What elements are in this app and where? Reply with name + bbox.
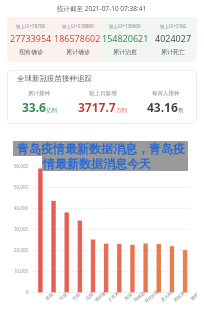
staticText: 20,000 bbox=[14, 247, 29, 253]
staticText: 累计确诊 bbox=[66, 48, 90, 56]
staticText: 亿剂 bbox=[46, 107, 57, 114]
staticText: 英国 bbox=[123, 292, 133, 301]
staticText: 西班牙 bbox=[173, 290, 186, 303]
staticText: 较上日+78758 bbox=[16, 23, 45, 29]
staticText: 0 bbox=[26, 289, 29, 295]
button[interactable]: 青岛疫情最新数据消息，青岛疫 bbox=[13, 141, 188, 156]
staticText: 60,000 bbox=[14, 163, 29, 169]
staticText: 累计接种 bbox=[28, 90, 50, 97]
staticText: 情最新数据消息今天 bbox=[43, 156, 151, 171]
button[interactable]: 全球新冠疫苗接种追踪 bbox=[7, 70, 197, 124]
button[interactable]: 较上日+136960 bbox=[101, 17, 149, 62]
staticText: 印度 bbox=[58, 292, 68, 301]
staticText: 哥伦比亚 bbox=[143, 289, 160, 304]
staticText: 万剂 bbox=[116, 107, 127, 114]
staticText: 阿根廷 bbox=[133, 290, 146, 303]
staticText: 30,000 bbox=[14, 226, 29, 232]
staticText: 剂 bbox=[178, 107, 184, 114]
staticText: 每百人接种 bbox=[152, 90, 180, 97]
staticText: 较上日新增 bbox=[89, 90, 117, 97]
staticText: 巴西 bbox=[71, 292, 81, 301]
staticText: 德国 bbox=[189, 292, 197, 301]
button[interactable]: 情最新数据消息今天 bbox=[42, 156, 188, 171]
staticText: 33.6 bbox=[22, 99, 46, 115]
staticText: 4024027 bbox=[155, 32, 192, 44]
staticText: 累计死亡 bbox=[161, 48, 185, 56]
staticText: 50,000 bbox=[14, 184, 29, 190]
staticText: 土耳其 bbox=[107, 290, 120, 303]
button[interactable]: 较上日+3162 bbox=[149, 17, 197, 62]
staticText: 全球新冠疫苗接种追踪 bbox=[17, 74, 92, 83]
staticText: 意大利 bbox=[160, 290, 173, 303]
staticText: 青岛疫情最新数据消息，青岛疫 bbox=[17, 141, 185, 156]
staticText: 43.16 bbox=[147, 99, 178, 115]
staticText: 美国 bbox=[44, 292, 54, 301]
staticText: 27733954 bbox=[10, 32, 52, 44]
staticText: 10,000 bbox=[14, 268, 29, 274]
staticText: 累计治愈 bbox=[113, 48, 137, 56]
staticText: 法国 bbox=[84, 292, 94, 301]
staticText: 较上日+3162 bbox=[160, 23, 187, 29]
staticText: 统计截至 2021-07-10 07:38:41 bbox=[57, 4, 147, 13]
staticText: 现有确诊 bbox=[19, 48, 43, 56]
staticText: 较上日+218880 bbox=[62, 23, 94, 29]
button[interactable]: 较上日+218880 bbox=[54, 17, 101, 62]
staticText: 186578602 bbox=[54, 32, 101, 44]
staticText: 154820621 bbox=[102, 32, 149, 44]
staticText: 较上日+136960 bbox=[109, 23, 141, 29]
staticText: 3717.7 bbox=[78, 99, 116, 115]
staticText: 俄罗斯 bbox=[94, 290, 107, 303]
staticText: 40,000 bbox=[14, 205, 29, 211]
button[interactable]: 较上日+78758 bbox=[7, 17, 54, 62]
